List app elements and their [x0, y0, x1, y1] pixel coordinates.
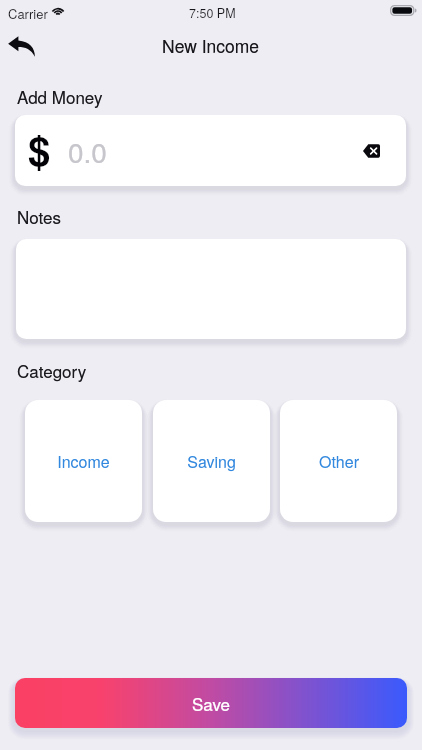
button[interactable]: Other — [280, 400, 397, 522]
staticText: Notes — [17, 204, 61, 228]
button[interactable]: Delete — [356, 136, 386, 166]
button[interactable]: $ — [15, 115, 406, 186]
staticText: 0.0 — [68, 131, 107, 171]
staticText: New Income — [162, 33, 260, 58]
staticText: New Income — [162, 33, 260, 58]
button[interactable]: Income — [25, 400, 142, 522]
staticText: Other — [319, 450, 359, 473]
staticText: Add Money — [17, 84, 103, 108]
staticText: Category — [17, 358, 87, 382]
button[interactable]: Back — [0, 24, 44, 68]
staticText: 7:50 PM — [189, 4, 236, 22]
staticText: $ — [28, 121, 51, 178]
staticText: Notes — [17, 204, 61, 228]
button[interactable]: Saving — [153, 400, 270, 522]
staticText: Category — [17, 358, 87, 382]
button[interactable]: Save — [15, 678, 407, 728]
staticText: Income — [57, 450, 110, 473]
staticText: Add Money — [17, 84, 103, 108]
staticText: Save — [192, 691, 231, 715]
staticText: Saving — [187, 450, 236, 473]
staticText: Carrier — [8, 4, 48, 23]
